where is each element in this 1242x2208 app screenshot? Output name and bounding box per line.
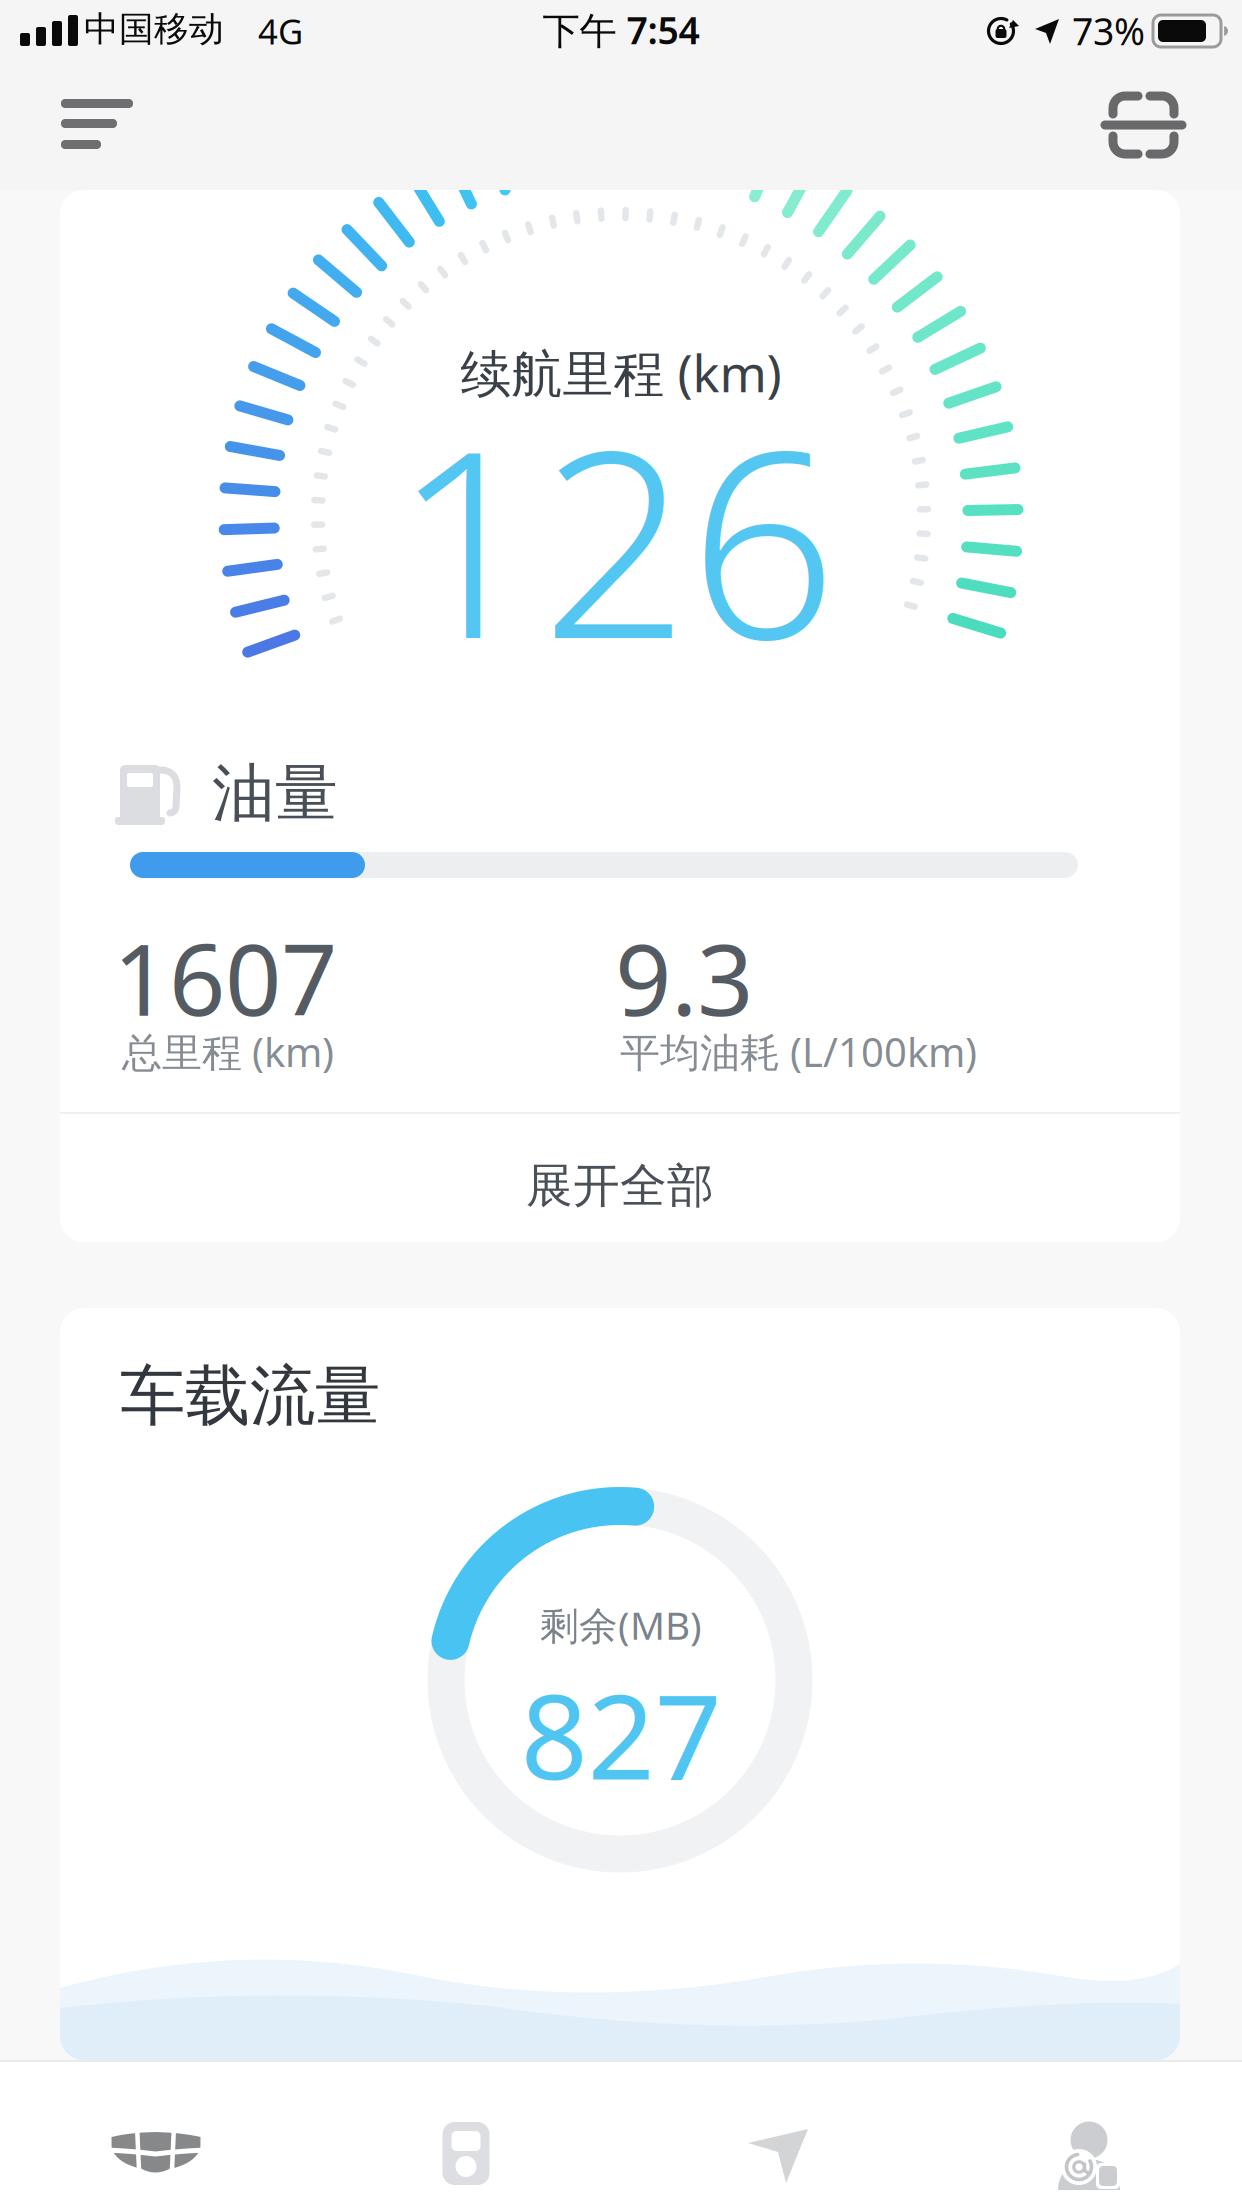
staticText: 827: [520, 1656, 721, 1812]
staticText: 9.3: [615, 912, 753, 1043]
staticText: 续航里程 (km): [460, 339, 781, 406]
staticText: 车载流量: [120, 1356, 380, 1436]
staticText: 总里程 (km): [122, 1025, 334, 1078]
staticText: 126: [393, 366, 837, 709]
staticText: 4G: [258, 8, 303, 54]
staticText: 中国移动: [84, 8, 224, 51]
button[interactable]: [310, 2060, 621, 2208]
button[interactable]: [40, 80, 150, 176]
staticText: 剩余(MB): [540, 1599, 702, 1650]
button[interactable]: [931, 2060, 1242, 2208]
button[interactable]: [0, 2060, 310, 2208]
button[interactable]: 展开全部: [60, 1114, 1180, 1240]
staticText: 油量: [212, 755, 338, 832]
staticText: 73%: [1072, 6, 1145, 56]
staticText: 下午 7:54: [542, 5, 699, 55]
staticText: 展开全部: [526, 1157, 714, 1215]
staticText: 1607: [113, 912, 337, 1043]
staticText: 平均油耗 (L/100km): [620, 1025, 977, 1078]
button[interactable]: [621, 2060, 931, 2208]
button[interactable]: [1092, 76, 1202, 172]
